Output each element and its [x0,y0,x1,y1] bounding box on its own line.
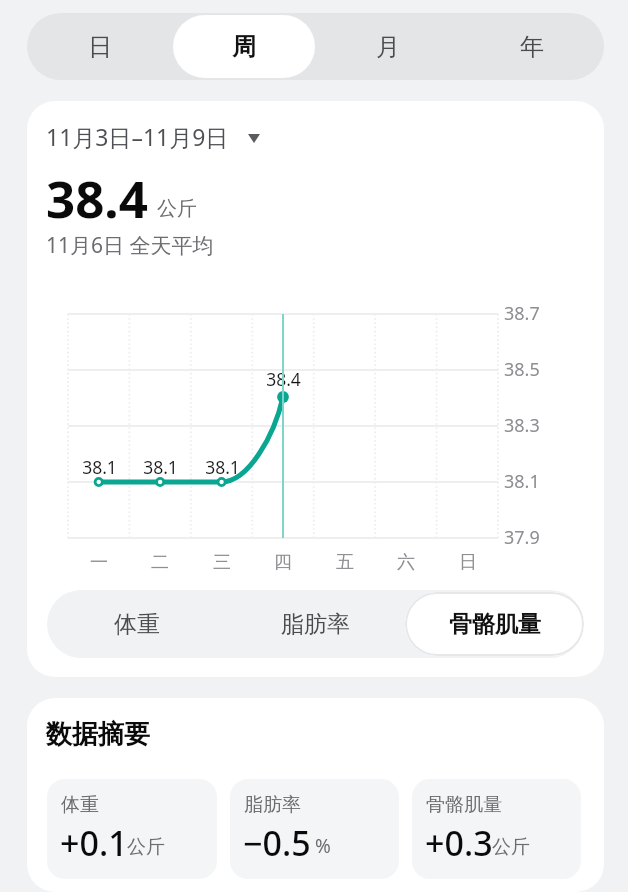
staticText: 三 [213,551,231,574]
staticText: 体重 [114,610,160,639]
button[interactable]: 体重 [47,592,226,656]
staticText: 五 [336,551,354,574]
staticText: 38.1 [143,455,178,479]
staticText: 38.5 [504,357,540,382]
staticText: 周 [232,32,256,62]
staticText: 数据摘要 [46,718,150,751]
staticText: 日 [459,551,477,574]
staticText: 38.4 [266,367,301,391]
staticText: 11月3日–11月9日 [46,121,229,152]
staticText: 月 [376,32,400,62]
staticText: 38.1 [504,469,540,494]
staticText: 脂肪率 [244,793,301,817]
staticText: 六 [397,551,415,574]
staticText: 骨骼肌量 [449,610,541,639]
staticText: 38.4 [46,163,148,232]
button[interactable]: 体重 [47,779,217,879]
button[interactable]: 月 [317,15,459,78]
staticText: 二 [151,551,169,574]
staticText: +0.1 [60,820,128,866]
button[interactable]: 周 [173,15,315,78]
staticText: +0.3 [425,820,493,866]
staticText: 四 [274,551,292,574]
staticText: 公斤 [492,835,530,859]
button[interactable]: 脂肪率 [226,592,405,656]
staticText: 体重 [61,793,99,817]
button[interactable]: 日 [28,15,171,78]
button[interactable]: 骨骼肌量 [405,592,584,656]
staticText: 公斤 [127,835,165,859]
staticText: 公斤 [157,196,197,221]
button[interactable]: 11月3日–11月9日 [46,121,260,152]
staticText: 年 [520,32,544,62]
staticText: 骨骼肌量 [426,793,502,817]
staticText: 38.7 [504,301,540,326]
button[interactable]: 骨骼肌量 [412,779,581,879]
button[interactable]: 脂肪率 [230,779,399,879]
button[interactable]: 年 [461,15,603,78]
staticText: 38.3 [504,413,540,438]
staticText: 一 [90,551,108,574]
staticText: 日 [88,32,112,62]
staticText: 38.1 [82,455,117,479]
staticText: 脂肪率 [281,610,350,639]
staticText: % [315,833,331,859]
staticText: 38.1 [205,455,240,479]
staticText: 37.9 [504,525,540,550]
staticText: 11月6日 全天平均 [46,231,214,260]
staticText: −0.5 [243,820,311,866]
